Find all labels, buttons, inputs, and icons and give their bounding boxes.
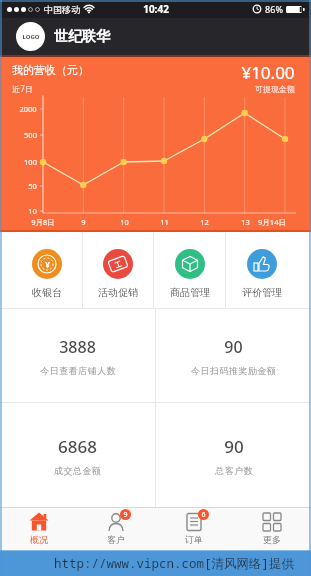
staticText: 9月14日 <box>258 217 286 227</box>
staticText: 11 <box>160 217 169 227</box>
staticText: 9 <box>123 510 128 520</box>
staticText: 评价管理 <box>242 286 282 299</box>
staticText: 100 <box>24 157 37 167</box>
staticText: 中国移动 <box>44 4 80 15</box>
staticText: 500 <box>24 130 37 140</box>
staticText: 9 <box>81 217 86 227</box>
staticText: 6868 <box>58 435 97 458</box>
staticText: 成交总金额 <box>54 465 102 476</box>
staticText: LOGO <box>22 33 40 41</box>
staticText: 3888 <box>59 336 96 358</box>
staticText: ¥ <box>45 259 50 270</box>
staticText: 近7日 <box>12 83 33 94</box>
staticText: 更多 <box>263 534 281 545</box>
staticText: 6 <box>201 510 206 520</box>
staticText: 概况 <box>30 534 48 545</box>
staticText: 我的营收（元） <box>12 63 89 77</box>
staticText: 90 <box>224 435 244 458</box>
staticText: 90 <box>224 336 243 358</box>
staticText: 总客户数 <box>215 465 253 476</box>
staticText: 订单 <box>185 534 203 545</box>
staticText: 12 <box>200 217 209 227</box>
staticText: 活动促销 <box>98 286 138 299</box>
staticText: 今日扫码推奖励金额 <box>191 365 277 376</box>
staticText: 2000 <box>19 104 37 114</box>
staticText: ¥10.00 <box>241 61 295 84</box>
staticText: 今日查看店铺人数 <box>40 365 116 376</box>
staticText: 客户 <box>107 534 125 545</box>
staticText: 10 <box>120 217 129 227</box>
staticText: http://www.vipcn.com[清风网络]提供 <box>54 555 295 572</box>
staticText: 13 <box>241 217 250 227</box>
staticText: 86% <box>265 3 283 15</box>
staticText: 50 <box>28 181 37 191</box>
staticText: 收银台 <box>32 286 62 299</box>
staticText: 9月8日 <box>31 217 55 227</box>
staticText: 可提现金额 <box>255 84 295 94</box>
staticText: 世纪联华 <box>54 28 110 46</box>
staticText: 10 <box>28 206 37 216</box>
staticText: 10:42 <box>143 2 169 16</box>
staticText: 商品管理 <box>170 286 210 299</box>
